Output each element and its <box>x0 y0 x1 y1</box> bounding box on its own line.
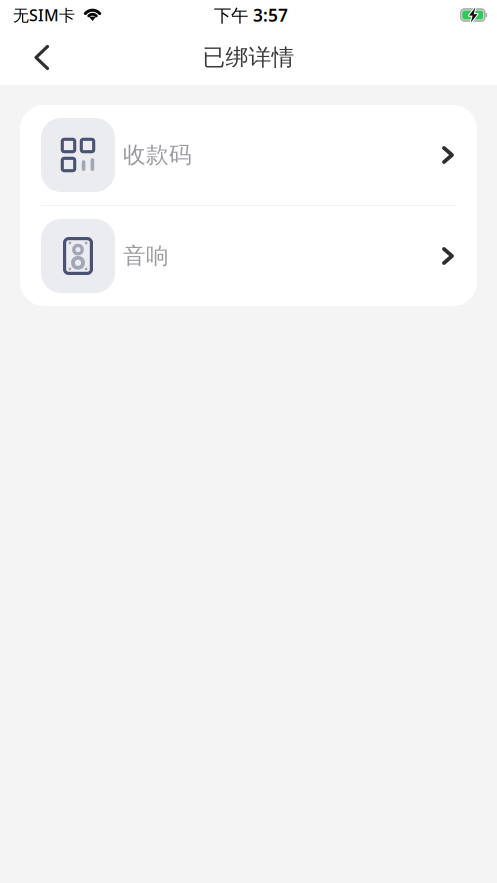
staticText: 收款码 <box>123 141 192 169</box>
staticText: 音响 <box>123 242 169 270</box>
button[interactable]: Back <box>0 32 64 82</box>
button[interactable]: 音响 <box>20 206 477 306</box>
staticText: 下午 3:57 <box>214 3 288 26</box>
staticText: 无SIM卡 <box>13 4 75 26</box>
staticText: 已绑详情 <box>202 44 294 71</box>
button[interactable]: 收款码 <box>20 105 477 205</box>
